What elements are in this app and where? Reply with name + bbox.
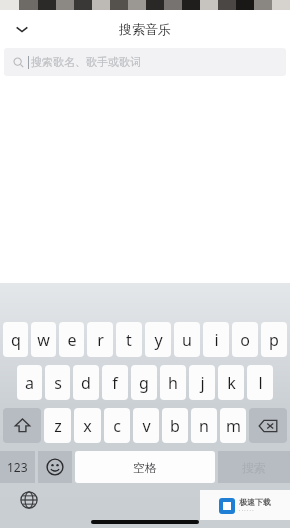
button[interactable]: h [160, 365, 186, 400]
button[interactable]: x [74, 408, 101, 443]
staticText: m [226, 415, 241, 437]
button[interactable]: i [203, 322, 229, 357]
staticText: o [240, 329, 250, 351]
button[interactable]: o [232, 322, 258, 357]
button[interactable]: 表情 [38, 451, 72, 483]
button[interactable]: b [162, 408, 188, 443]
button[interactable]: l [247, 365, 273, 400]
button[interactable]: 123 [0, 451, 35, 483]
staticText: 空格 [133, 460, 157, 475]
staticText: z [54, 415, 62, 437]
button[interactable] [3, 408, 41, 443]
staticText: r [97, 329, 104, 351]
button[interactable]: u [174, 322, 200, 357]
button[interactable]: t [116, 322, 142, 357]
staticText: 搜索 [242, 460, 266, 475]
staticText: a [25, 372, 34, 394]
button[interactable]: g [131, 365, 157, 400]
staticText: 极速下载 [239, 497, 271, 507]
staticText: b [170, 415, 180, 437]
staticText: · · · · · · [239, 507, 254, 514]
button[interactable]: k [218, 365, 244, 400]
staticText: 123 [7, 459, 28, 475]
staticText: s [54, 372, 62, 394]
button[interactable]: d [73, 365, 99, 400]
button[interactable]: p [261, 322, 287, 357]
button[interactable]: 收起 [6, 13, 38, 45]
button[interactable]: m [220, 408, 246, 443]
button[interactable]: f [102, 365, 128, 400]
staticText: t [126, 329, 132, 351]
staticText: y [154, 329, 163, 351]
button[interactable]: j [189, 365, 215, 400]
staticText: w [37, 329, 50, 351]
staticText: c [113, 415, 121, 437]
staticText: q [11, 329, 21, 351]
button[interactable]: 切换输入法 [18, 489, 40, 511]
staticText: g [139, 372, 149, 394]
button[interactable]: z [44, 408, 71, 443]
button[interactable] [249, 408, 287, 443]
button[interactable]: q [3, 322, 28, 357]
staticText: i [214, 329, 219, 351]
staticText: h [168, 372, 178, 394]
staticText: u [182, 329, 192, 351]
button[interactable]: c [104, 408, 130, 443]
staticText: p [269, 329, 279, 351]
button[interactable]: y [145, 322, 171, 357]
staticText: 搜索歌名、歌手或歌词 [31, 55, 141, 69]
staticText: l [258, 372, 263, 394]
button[interactable]: e [59, 322, 84, 357]
staticText: e [67, 329, 77, 351]
staticText: j [200, 372, 205, 394]
staticText: v [142, 415, 151, 437]
staticText: n [199, 415, 209, 437]
staticText: d [81, 372, 91, 394]
button[interactable]: v [133, 408, 159, 443]
button[interactable]: n [191, 408, 217, 443]
staticText: f [112, 372, 118, 394]
button[interactable]: r [87, 322, 113, 357]
staticText: k [227, 372, 236, 394]
button[interactable]: 搜索歌名、歌手或歌词 [4, 48, 286, 76]
button[interactable]: s [45, 365, 70, 400]
staticText: 搜索音乐 [119, 21, 171, 37]
button[interactable]: w [31, 322, 56, 357]
button[interactable]: 空格 [75, 451, 215, 483]
button[interactable]: a [17, 365, 42, 400]
staticText: x [83, 415, 92, 437]
